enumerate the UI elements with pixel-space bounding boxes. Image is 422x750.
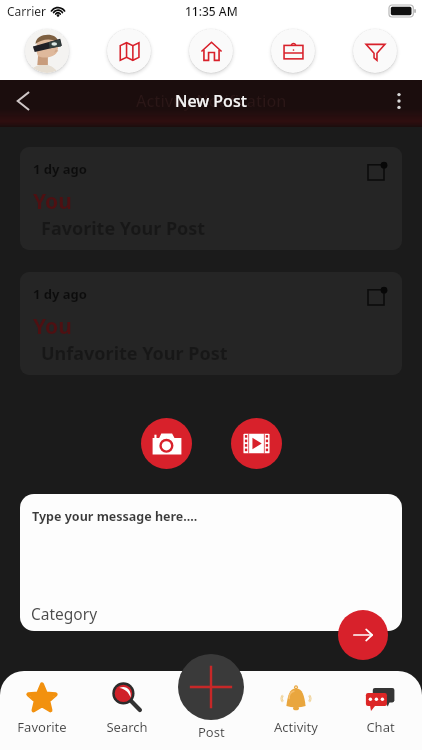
button[interactable]: Map xyxy=(107,29,151,73)
button[interactable]: Send xyxy=(338,610,388,660)
button[interactable]: Favorite xyxy=(0,682,84,736)
button[interactable]: Select xyxy=(368,287,388,307)
staticText: 11:35 AM xyxy=(185,3,238,19)
button[interactable]: Activity xyxy=(254,682,338,736)
button[interactable]: Video xyxy=(231,418,282,469)
button[interactable]: Select xyxy=(368,162,388,182)
button[interactable]: Type your message here.... xyxy=(20,494,402,631)
button[interactable]: 1 dy ago xyxy=(20,272,402,375)
staticText: You xyxy=(33,312,72,341)
staticText: New Post xyxy=(175,90,247,112)
button[interactable]: Back xyxy=(0,78,46,124)
button[interactable]: More options xyxy=(376,78,422,124)
staticText: Favorite Your Post xyxy=(41,216,206,241)
staticText: Post xyxy=(198,723,225,741)
staticText: Activity Notification xyxy=(136,90,287,112)
button[interactable]: 1 dy ago xyxy=(20,147,402,250)
staticText: Search xyxy=(106,718,148,736)
staticText: Category xyxy=(31,603,98,624)
staticText: Chat xyxy=(366,718,395,736)
staticText: Carrier xyxy=(7,3,47,19)
staticText: Activity xyxy=(274,718,318,736)
button[interactable]: Post xyxy=(178,654,244,720)
staticText: 1 dy ago xyxy=(33,285,87,303)
staticText: Unfavorite Your Post xyxy=(41,341,228,366)
button[interactable]: Work xyxy=(271,29,315,73)
staticText: You xyxy=(33,187,72,216)
button[interactable]: Profile xyxy=(25,29,69,73)
staticText: Type your message here.... xyxy=(32,508,198,525)
button[interactable]: Filter xyxy=(353,29,397,73)
button[interactable]: Camera xyxy=(141,418,192,469)
button[interactable]: Home xyxy=(189,29,233,73)
button[interactable]: Search xyxy=(85,682,169,736)
staticText: 1 dy ago xyxy=(33,160,87,178)
button[interactable]: Chat xyxy=(338,682,422,736)
staticText: Favorite xyxy=(17,718,67,736)
